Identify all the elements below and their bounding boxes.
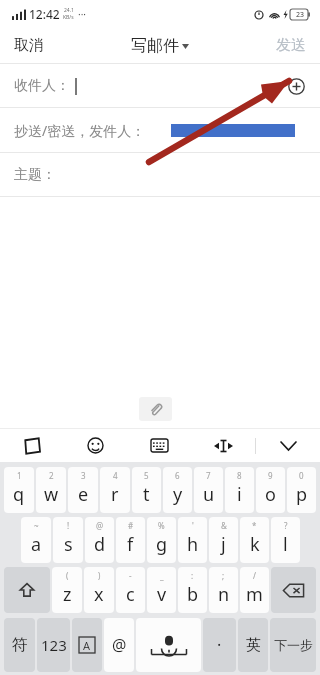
button[interactable]: 6 [163,467,192,513]
button[interactable]: / [240,567,269,613]
button[interactable]: ! [53,517,83,563]
staticText: 7 [206,470,211,481]
button[interactable]: Cursor move [191,429,255,462]
button[interactable]: ) [84,567,114,613]
staticText: w [44,482,59,507]
staticText: 收件人： [14,77,70,95]
staticText: ? [284,520,288,531]
staticText: i [237,482,242,507]
button[interactable]: 下一步 [270,618,316,672]
staticText: 12:42 [29,6,60,22]
staticText: 符 [12,635,28,655]
staticText: b [187,582,199,607]
staticText: - [129,570,132,581]
staticText: u [203,482,215,507]
staticText: 123 [41,635,67,655]
button[interactable]: Space, voice input [136,618,201,672]
staticText: t [143,482,150,507]
button[interactable]: ( [52,567,82,613]
button[interactable]: 4 [100,467,130,513]
staticText: 写邮件 [131,36,179,56]
button[interactable]: & [209,517,238,563]
button[interactable]: Sogou input [0,429,63,462]
button[interactable]: ? [271,517,300,563]
staticText: @ [96,520,104,531]
button[interactable]: 英 [238,618,268,672]
button[interactable]: 123 [37,618,70,672]
staticText: : [191,570,194,581]
staticText: ; [222,570,225,581]
staticText: 主题： [14,166,56,184]
button[interactable]: 符 [4,618,35,672]
staticText: c [126,582,135,607]
staticText: ) [98,570,101,581]
staticText: & [221,520,227,531]
staticText: 抄送/密送，发件人： [14,121,146,140]
button[interactable]: Shift [4,567,50,613]
staticText: e [78,482,89,507]
staticText: / [253,570,256,581]
button[interactable]: ; [209,567,238,613]
button[interactable]: : [178,567,207,613]
staticText: 9 [268,470,273,481]
staticText: · [217,634,222,656]
button[interactable]: 0 [287,467,316,513]
button[interactable]: 5 [132,467,161,513]
other: Shift [4,567,50,613]
staticText: a [31,532,42,557]
button[interactable]: 发送 [262,30,320,61]
button[interactable]: # [116,517,145,563]
staticText: 0 [299,470,304,481]
button[interactable]: 1 [4,467,34,513]
staticText: m [246,582,263,607]
button[interactable]: Keyboard layout [127,429,191,462]
button[interactable]: 收件人： [0,64,320,107]
staticText: l [283,532,288,557]
staticText: _ [160,570,164,581]
button[interactable]: 抄送/密送，发件人： [0,108,320,152]
button[interactable]: Emoji [63,429,127,462]
other: Space, voice input [136,618,201,672]
other: Backspace [271,567,316,613]
button[interactable]: ~ [21,517,51,563]
staticText: h [187,532,199,557]
button[interactable]: 3 [68,467,98,513]
button[interactable]: * [240,517,269,563]
button[interactable]: 2 [36,467,66,513]
button[interactable]: Add recipient [284,74,308,98]
staticText: KB/s [63,14,74,21]
staticText: A [83,638,91,653]
button[interactable]: @ [85,517,114,563]
staticText: o [265,482,276,507]
button[interactable]: Hide keyboard [256,429,320,462]
button[interactable]: · [203,618,236,672]
button[interactable]: 8 [225,467,254,513]
button[interactable]: 7 [194,467,223,513]
staticText: # [128,520,134,531]
button[interactable]: 9 [256,467,285,513]
button[interactable]: _ [147,567,176,613]
button[interactable]: ' [178,517,207,563]
button[interactable]: - [116,567,145,613]
staticText: ! [67,520,70,531]
staticText: 取消 [14,36,44,55]
staticText: ~ [34,520,39,531]
staticText: 2 [49,470,54,481]
button[interactable]: Backspace [271,567,316,613]
button[interactable]: % [147,517,176,563]
staticText: % [158,520,165,531]
staticText: @ [112,634,127,656]
staticText: k [250,532,260,557]
button[interactable]: Capitalization [72,618,102,672]
button[interactable]: 写邮件 [123,32,197,60]
staticText: 8 [237,470,242,481]
button[interactable]: 主题： [0,153,320,196]
staticText: 下一步 [274,637,313,653]
staticText: s [64,532,73,557]
button[interactable]: Attach file [139,397,172,421]
button[interactable]: 取消 [0,30,58,61]
button[interactable]: @ [104,618,134,672]
staticText: ' [192,520,194,531]
staticText: g [156,532,168,557]
staticText: * [252,520,257,531]
